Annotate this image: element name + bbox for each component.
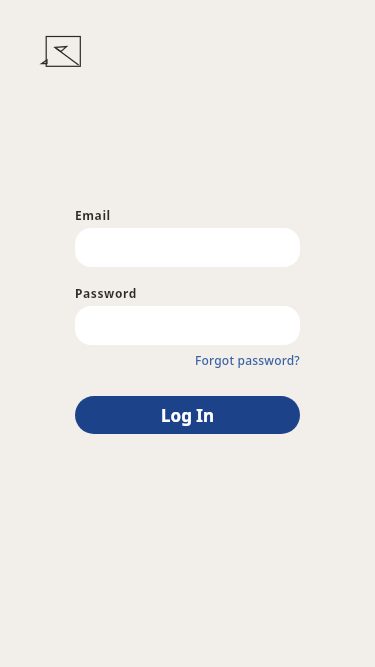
staticText: Password	[75, 285, 137, 301]
button[interactable]: Log In	[75, 396, 300, 434]
staticText: Forgot password?	[195, 352, 300, 368]
button[interactable]	[75, 228, 300, 267]
staticText: Log In	[161, 404, 214, 427]
button[interactable]	[75, 306, 300, 345]
button[interactable]: Forgot password?	[195, 352, 300, 368]
staticText: Email	[75, 207, 111, 223]
